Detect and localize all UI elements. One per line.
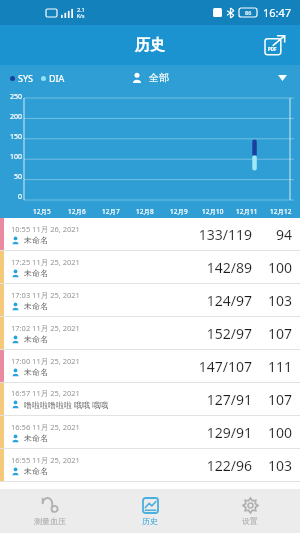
- staticText: 103: [260, 291, 292, 310]
- staticText: 17:00 11月 25, 2021: [11, 356, 80, 366]
- staticText: DIA: [49, 72, 65, 84]
- button[interactable]: 17:00 11月 25, 2021: [0, 350, 300, 382]
- staticText: 107: [260, 324, 292, 343]
- staticText: 12月10: [202, 207, 224, 216]
- staticText: 噜啦啦噜啦啦 哦哦 哦哦: [24, 399, 109, 410]
- staticText: 2.1: [77, 6, 85, 13]
- button[interactable]: 16:55 11月 25, 2021: [0, 449, 300, 481]
- staticText: 未命名: [24, 466, 48, 476]
- staticText: 设置: [242, 516, 258, 526]
- button[interactable]: 设置: [200, 493, 300, 530]
- staticText: 94: [260, 225, 292, 244]
- staticText: 0: [2, 192, 22, 202]
- staticText: 127/91: [182, 390, 252, 409]
- staticText: 历史: [142, 516, 158, 526]
- staticText: 250: [2, 92, 22, 102]
- staticText: 17:25 11月 25, 2021: [11, 257, 80, 267]
- staticText: 152/97: [182, 324, 252, 343]
- button[interactable]: 10:55 11月 26, 2021: [0, 218, 300, 250]
- staticText: 150: [2, 132, 22, 142]
- staticText: K/s: [77, 13, 85, 20]
- staticText: 129/91: [182, 423, 252, 442]
- staticText: 142/89: [182, 258, 252, 277]
- staticText: 全部: [149, 71, 169, 84]
- staticText: 147/107: [182, 357, 252, 376]
- staticText: 124/97: [182, 291, 252, 310]
- staticText: 未命名: [24, 433, 48, 443]
- staticText: 200: [2, 112, 22, 122]
- staticText: PDF: [268, 46, 277, 52]
- staticText: 12月11: [236, 207, 258, 216]
- staticText: 12月7: [102, 207, 120, 216]
- button[interactable]: 全部: [131, 71, 169, 84]
- staticText: 历史: [135, 36, 165, 55]
- button[interactable]: 17:03 11月 25, 2021: [0, 284, 300, 316]
- staticText: 16:57 11月 25, 2021: [11, 388, 80, 398]
- staticText: 测量血压: [34, 516, 66, 526]
- staticText: 12月6: [68, 207, 86, 216]
- button[interactable]: 历史: [100, 493, 200, 530]
- button[interactable]: 17:02 11月 25, 2021: [0, 317, 300, 349]
- staticText: 未命名: [24, 334, 48, 344]
- staticText: 111: [260, 357, 292, 376]
- staticText: 17:03 11月 25, 2021: [11, 290, 80, 300]
- staticText: 100: [260, 258, 292, 277]
- staticText: 未命名: [24, 301, 48, 311]
- staticText: 17:02 11月 25, 2021: [11, 323, 80, 333]
- staticText: 10:55 11月 26, 2021: [11, 224, 80, 234]
- staticText: 未命名: [24, 367, 48, 377]
- button[interactable]: 16:57 11月 25, 2021: [0, 383, 300, 415]
- staticText: 未命名: [24, 268, 48, 278]
- staticText: 16:47: [263, 5, 292, 20]
- staticText: 100: [2, 152, 22, 162]
- button[interactable]: 17:25 11月 25, 2021: [0, 251, 300, 283]
- staticText: 50: [2, 172, 22, 182]
- staticText: SYS: [18, 72, 33, 84]
- button[interactable]: Export PDF: [260, 30, 290, 60]
- staticText: 16:56 11月 25, 2021: [11, 422, 80, 432]
- button[interactable]: 测量血压: [0, 493, 100, 530]
- staticText: 16:55 11月 25, 2021: [11, 455, 80, 465]
- staticText: 未命名: [24, 235, 48, 245]
- staticText: 133/119: [182, 225, 252, 244]
- staticText: 103: [260, 456, 292, 475]
- button[interactable]: Filter dropdown: [274, 70, 290, 86]
- staticText: 12月5: [33, 207, 51, 216]
- staticText: 86: [245, 9, 252, 16]
- staticText: 12月12: [270, 207, 292, 216]
- button[interactable]: 16:56 11月 25, 2021: [0, 416, 300, 448]
- staticText: 107: [260, 390, 292, 409]
- staticText: 122/96: [182, 456, 252, 475]
- staticText: 100: [260, 423, 292, 442]
- staticText: 12月8: [136, 207, 154, 216]
- staticText: 12月9: [170, 207, 188, 216]
